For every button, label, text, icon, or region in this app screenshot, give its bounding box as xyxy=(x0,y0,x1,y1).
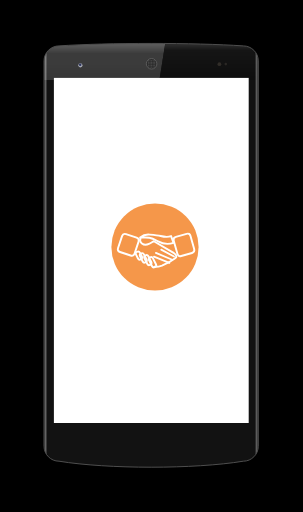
other: Handshake app splash screen xyxy=(0,0,303,512)
